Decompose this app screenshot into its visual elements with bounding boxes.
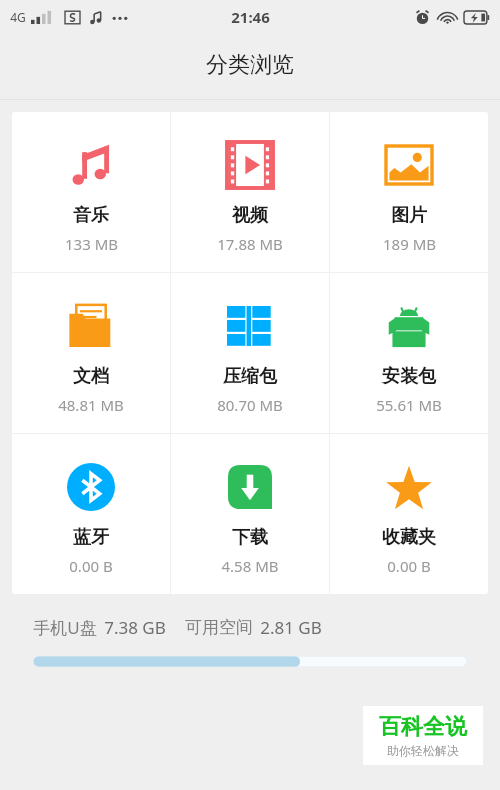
button[interactable]: 收藏夹: [330, 434, 488, 594]
button[interactable]: 文档: [12, 273, 170, 433]
staticText: 21:46: [231, 7, 270, 27]
staticText: 音乐: [73, 204, 109, 227]
staticText: 文档: [73, 365, 109, 388]
staticText: 0.00 B: [69, 556, 113, 576]
staticText: 蓝牙: [73, 526, 109, 549]
button[interactable]: 图片: [330, 112, 488, 272]
staticText: 0.00 B: [387, 556, 431, 576]
staticText: 4.58 MB: [221, 556, 279, 576]
staticText: 手机U盘: [33, 616, 97, 639]
staticText: 7.38 GB: [104, 616, 166, 639]
button[interactable]: 安装包: [330, 273, 488, 433]
staticText: 17.88 MB: [217, 234, 283, 254]
staticText: 收藏夹: [382, 526, 436, 549]
staticText: 百科全说: [379, 713, 467, 741]
staticText: 分类浏览: [206, 51, 294, 79]
button[interactable]: 下载: [171, 434, 329, 594]
staticText: 安装包: [382, 365, 436, 388]
staticText: 视频: [232, 204, 268, 227]
staticText: 189 MB: [383, 234, 436, 254]
button[interactable]: 音乐: [12, 112, 170, 272]
staticText: 可用空间: [185, 617, 253, 638]
button[interactable]: 压缩包: [171, 273, 329, 433]
staticText: 下载: [232, 526, 268, 549]
staticText: 压缩包: [223, 365, 277, 388]
staticText: 55.61 MB: [376, 395, 442, 415]
button[interactable]: 视频: [171, 112, 329, 272]
staticText: 2.81 GB: [260, 616, 322, 639]
staticText: 80.70 MB: [217, 395, 283, 415]
staticText: 133 MB: [65, 234, 118, 254]
staticText: 4G: [10, 9, 26, 25]
staticText: 48.81 MB: [58, 395, 124, 415]
staticText: 助你轻松解决: [387, 743, 459, 758]
button[interactable]: 蓝牙: [12, 434, 170, 594]
staticText: 图片: [391, 204, 427, 227]
